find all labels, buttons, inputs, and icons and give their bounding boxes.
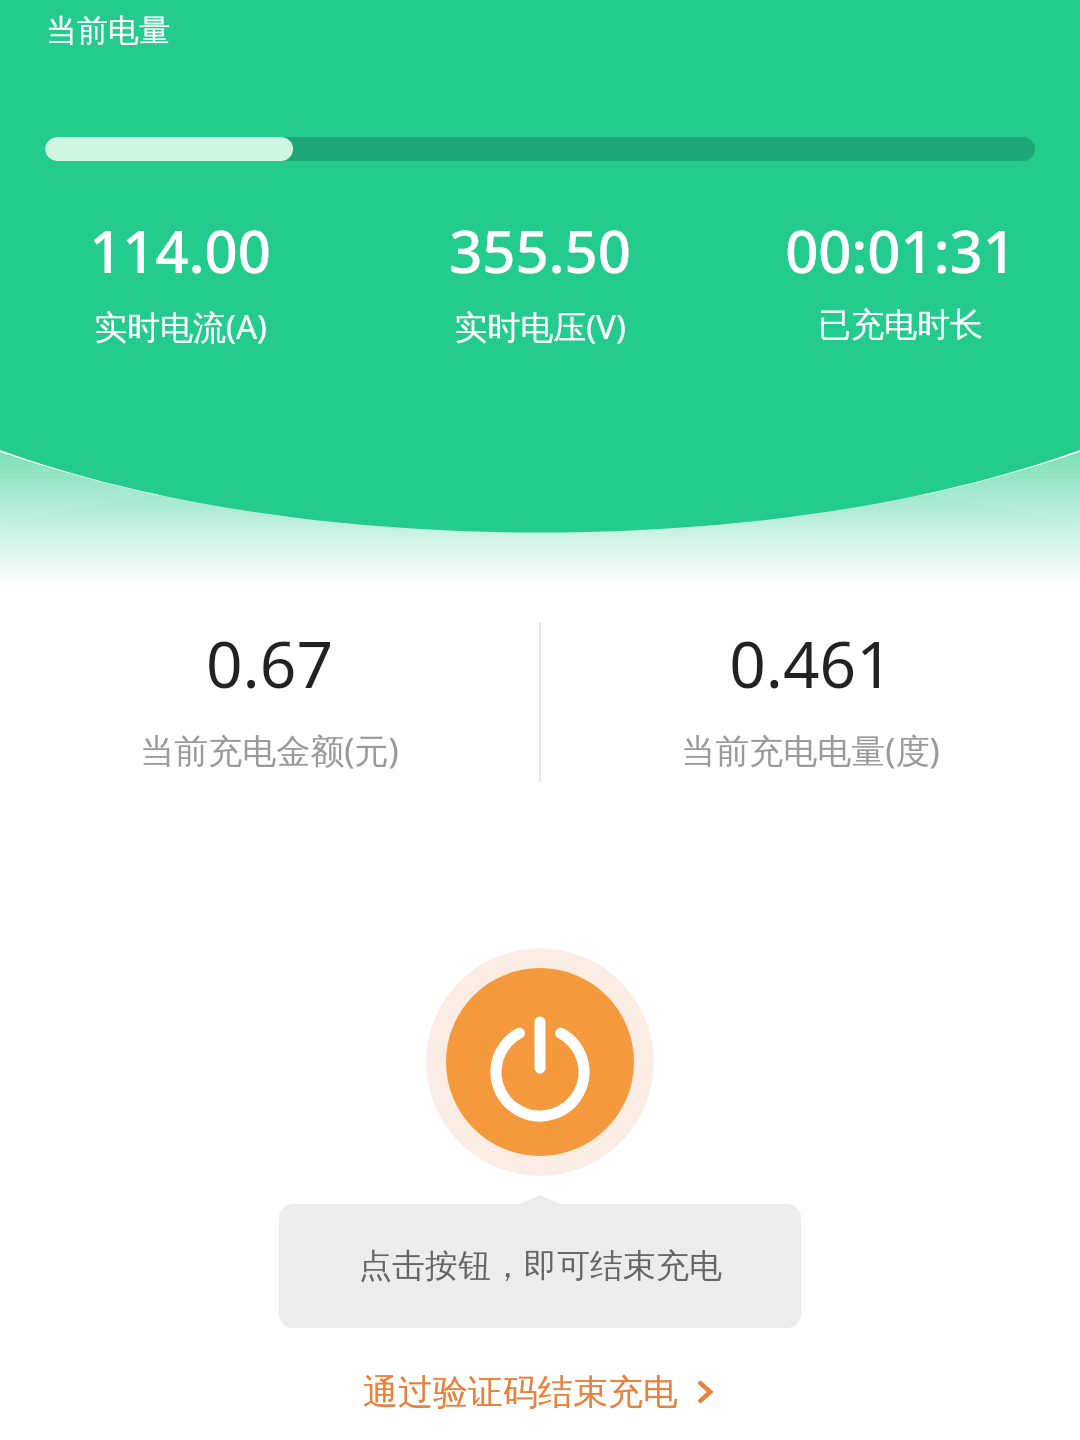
staticText: 00:01:31 — [785, 211, 1016, 290]
button[interactable]: 通过验证码结束充电 — [349, 1364, 732, 1420]
staticText: 实时电流(A) — [94, 304, 267, 349]
staticText: 通过验证码结束充电 — [363, 1370, 678, 1414]
staticText: 当前电量 — [46, 11, 170, 50]
button[interactable]: 结束充电 — [426, 948, 654, 1176]
staticText: 当前充电金额(元) — [140, 727, 399, 773]
button[interactable]: 点击按钮，即可结束充电 — [279, 1204, 801, 1328]
staticText: 114.00 — [89, 211, 271, 290]
staticText: 已充电时长 — [818, 304, 983, 346]
staticText: 当前充电电量(度) — [681, 727, 940, 773]
staticText: 实时电压(V) — [454, 304, 626, 349]
staticText: 点击按钮，即可结束充电 — [359, 1245, 722, 1287]
staticText: 355.50 — [449, 211, 631, 290]
staticText: 0.67 — [206, 620, 333, 707]
staticText: 0.461 — [729, 620, 893, 707]
